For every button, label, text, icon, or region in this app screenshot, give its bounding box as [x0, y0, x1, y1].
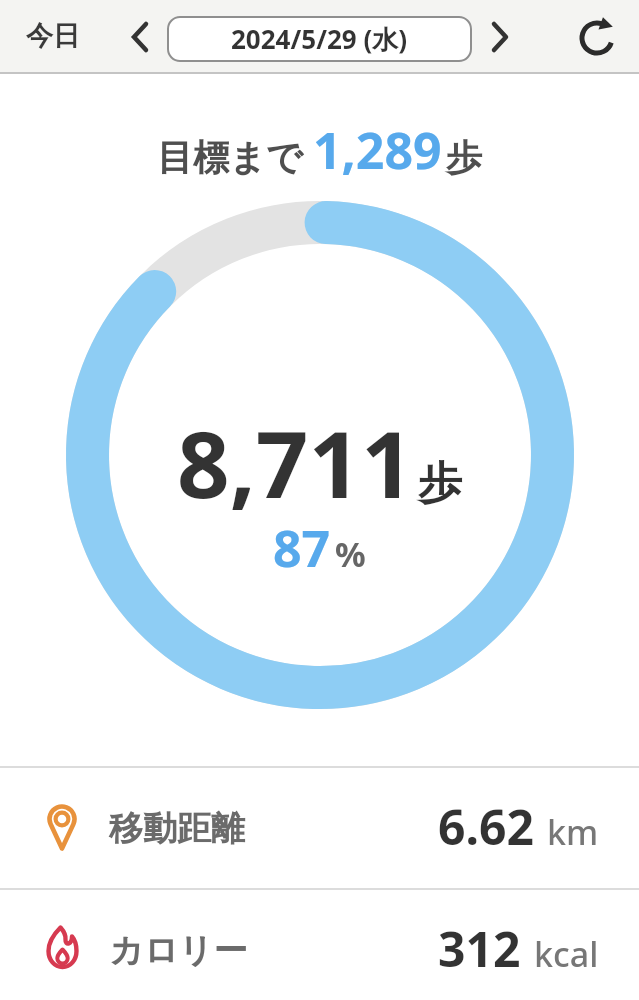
- staticText: 6.62: [438, 794, 534, 859]
- staticText: 312: [438, 916, 521, 981]
- staticText: km: [547, 809, 599, 855]
- staticText: 2024/5/29 (水): [231, 21, 408, 57]
- staticText: 1,289: [313, 116, 442, 184]
- button[interactable]: 移動距離: [0, 768, 639, 888]
- button[interactable]: [576, 17, 618, 59]
- staticText: 歩: [446, 135, 482, 180]
- button[interactable]: カロリー: [0, 890, 639, 1000]
- staticText: kcal: [534, 931, 599, 977]
- staticText: 歩: [418, 456, 462, 511]
- button[interactable]: 今日: [26, 19, 80, 53]
- staticText: 8,711: [177, 400, 414, 525]
- staticText: 今日: [26, 19, 80, 53]
- staticText: 87: [273, 514, 331, 582]
- staticText: %: [335, 531, 366, 577]
- staticText: 移動距離: [109, 807, 245, 850]
- button[interactable]: [124, 20, 158, 54]
- button[interactable]: 2024/5/29 (水): [167, 16, 472, 62]
- staticText: 目標まで: [157, 135, 303, 180]
- button[interactable]: [482, 20, 516, 54]
- staticText: カロリー: [109, 929, 248, 972]
